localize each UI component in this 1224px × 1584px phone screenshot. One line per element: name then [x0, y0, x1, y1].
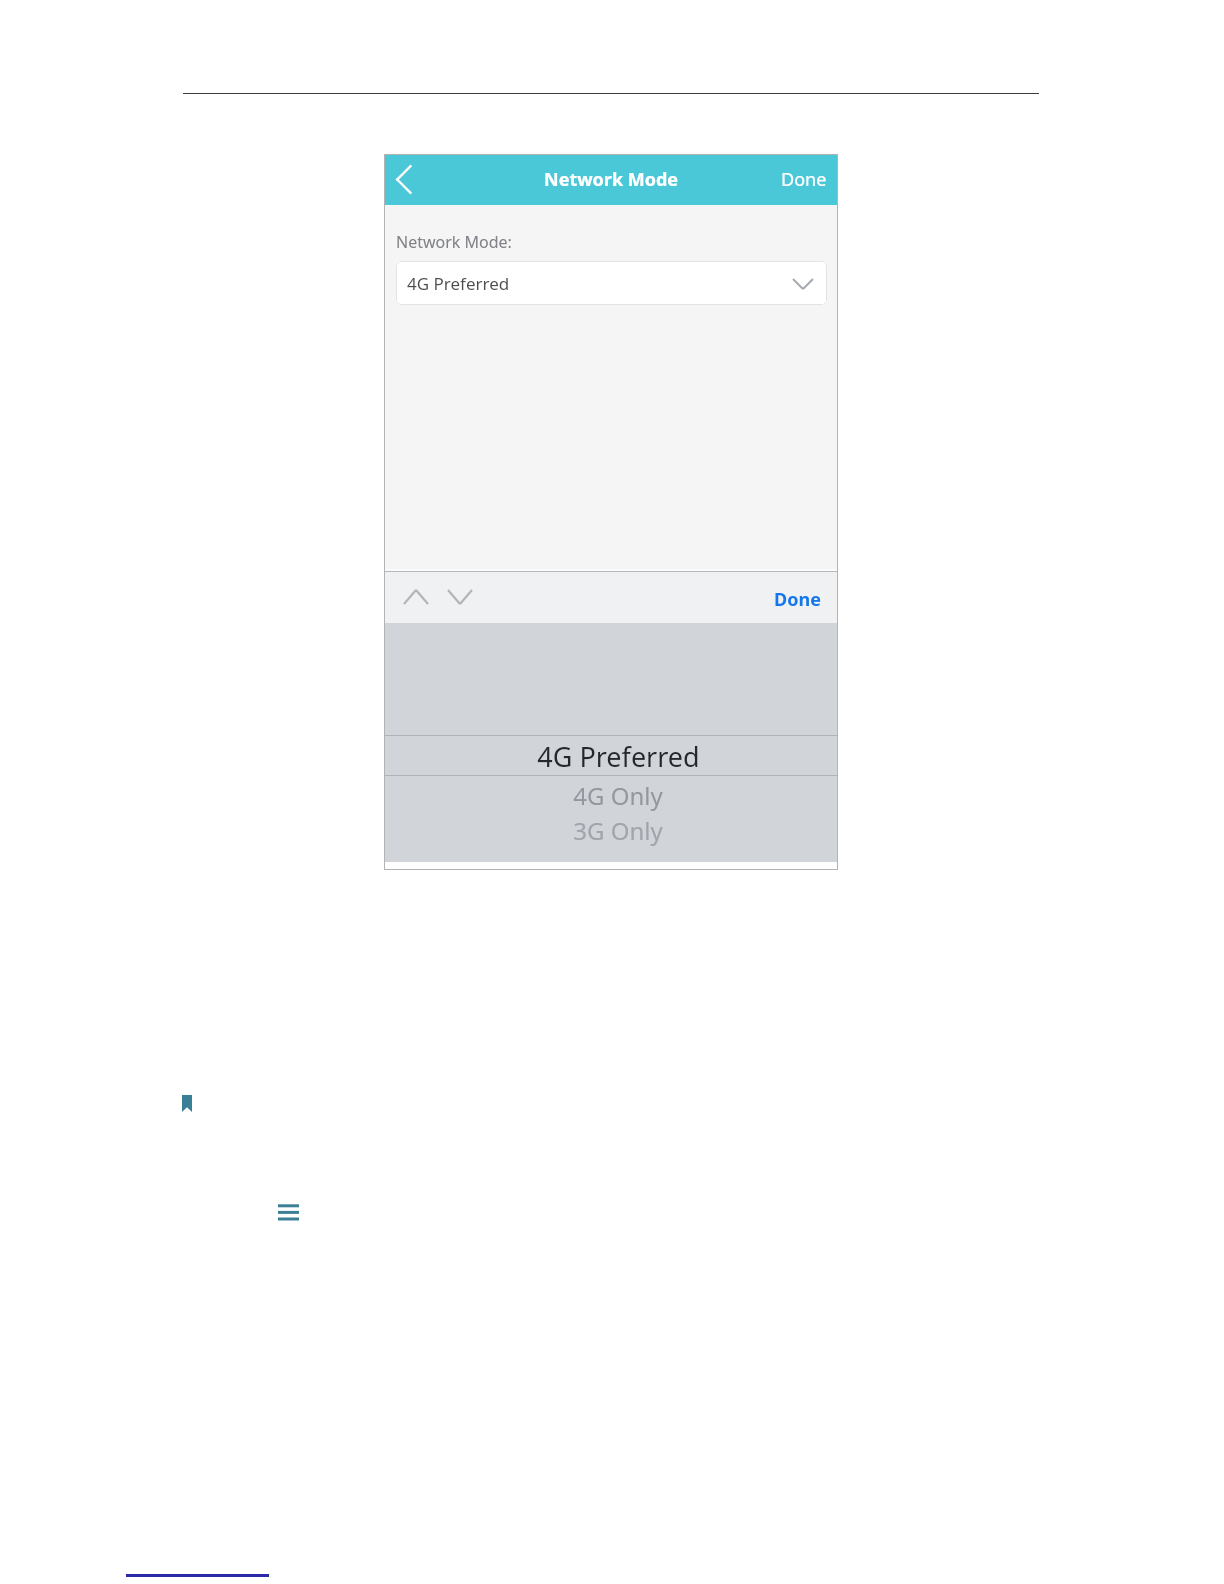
- staticText: Network Mode: [544, 167, 679, 192]
- button[interactable]: 4G Preferred: [384, 736, 838, 775]
- button[interactable]: Done: [770, 157, 838, 202]
- button[interactable]: Done: [757, 577, 838, 622]
- staticText: Network Mode:: [396, 231, 512, 253]
- button[interactable]: Menu: [278, 1203, 299, 1223]
- staticText: 4G Only: [573, 779, 663, 812]
- button[interactable]: 4G Only: [384, 775, 838, 810]
- button[interactable]: Bookmark: [182, 1095, 192, 1112]
- button[interactable]: 4G Preferred: [396, 261, 827, 305]
- button[interactable]: Previous field: [394, 572, 438, 623]
- staticText: 3G Only: [573, 814, 663, 847]
- button[interactable]: Back: [384, 154, 424, 205]
- staticText: 4G Preferred: [537, 738, 700, 775]
- staticText: Done: [774, 587, 821, 612]
- staticText: 4G Preferred: [407, 272, 510, 295]
- button[interactable]: Next field: [438, 572, 482, 623]
- staticText: Done: [781, 167, 827, 192]
- button[interactable]: 3G Only: [384, 810, 838, 845]
